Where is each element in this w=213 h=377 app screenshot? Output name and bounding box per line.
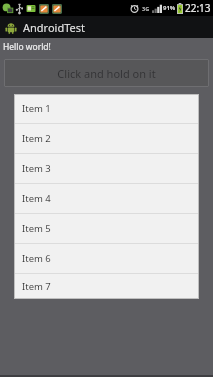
button[interactable]: Item 4 xyxy=(14,184,199,213)
staticText: Item 2 xyxy=(22,132,51,145)
staticText: Hello world! xyxy=(3,41,51,53)
staticText: Item 4 xyxy=(22,192,51,205)
staticText: AndroidTest xyxy=(23,20,85,35)
button[interactable]: Item 6 xyxy=(14,244,199,273)
button[interactable]: Item 7 xyxy=(14,274,199,299)
staticText: 22:13 xyxy=(185,1,211,15)
staticText: 91% xyxy=(163,4,176,12)
staticText: Item 3 xyxy=(22,162,51,175)
staticText: Click and hold on it xyxy=(57,66,156,81)
staticText: Item 5 xyxy=(22,222,51,235)
button[interactable]: Item 2 xyxy=(14,124,199,153)
button[interactable]: Item 1 xyxy=(14,94,199,123)
button[interactable]: Item 5 xyxy=(14,214,199,243)
button[interactable]: Click and hold on it xyxy=(4,59,209,87)
staticText: Item 7 xyxy=(22,280,51,293)
staticText: Item 6 xyxy=(22,252,51,265)
button[interactable]: Item 3 xyxy=(14,154,199,183)
staticText: 3G xyxy=(142,5,150,12)
staticText: Item 1 xyxy=(22,102,51,115)
